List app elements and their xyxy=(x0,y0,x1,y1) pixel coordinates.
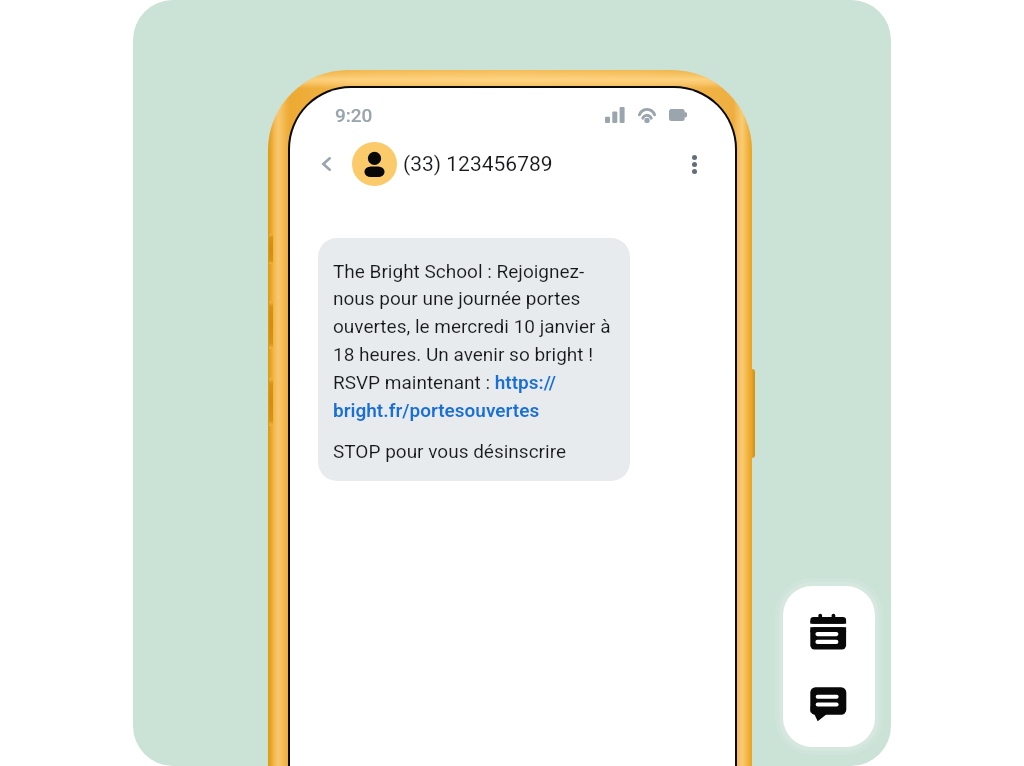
button[interactable]: Back xyxy=(311,149,341,179)
staticText: (33) 123456789 xyxy=(403,152,553,177)
button[interactable]: Calendar and messages xyxy=(783,586,875,747)
button[interactable]: The Bright School : Rejoignez-nous pour … xyxy=(318,238,630,481)
button[interactable]: Contact avatar xyxy=(352,142,397,186)
staticText: STOP pour vous désinscrire xyxy=(333,440,567,462)
button[interactable]: More options xyxy=(679,149,709,179)
staticText: 9:20 xyxy=(335,104,373,126)
staticText: The Bright School : Rejoignez-nous pour … xyxy=(333,260,616,421)
